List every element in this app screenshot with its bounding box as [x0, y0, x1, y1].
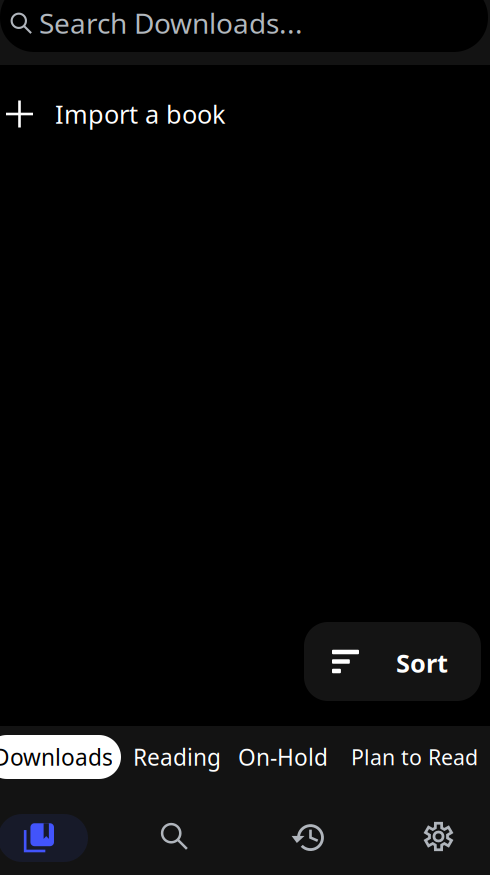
- staticText: Import a book: [55, 97, 226, 131]
- button[interactable]: Downloads: [0, 735, 121, 779]
- button[interactable]: Plan to Read: [343, 735, 486, 779]
- button[interactable]: Reading: [125, 735, 229, 779]
- staticText: Downloads: [0, 742, 113, 772]
- button[interactable]: Library: [0, 782, 122, 875]
- button[interactable]: History: [244, 782, 366, 875]
- button[interactable]: Sort: [304, 622, 481, 701]
- button[interactable]: Search Downloads...: [0, 0, 488, 52]
- button[interactable]: Import a book: [0, 86, 490, 142]
- staticText: Reading: [133, 742, 221, 772]
- staticText: Sort: [396, 646, 448, 680]
- button[interactable]: On-Hold: [230, 735, 336, 779]
- staticText: Plan to Read: [351, 743, 478, 771]
- staticText: On-Hold: [238, 742, 328, 772]
- staticText: Search Downloads...: [39, 4, 303, 42]
- button[interactable]: Browse sources: [122, 782, 244, 875]
- button[interactable]: Settings: [366, 782, 490, 875]
